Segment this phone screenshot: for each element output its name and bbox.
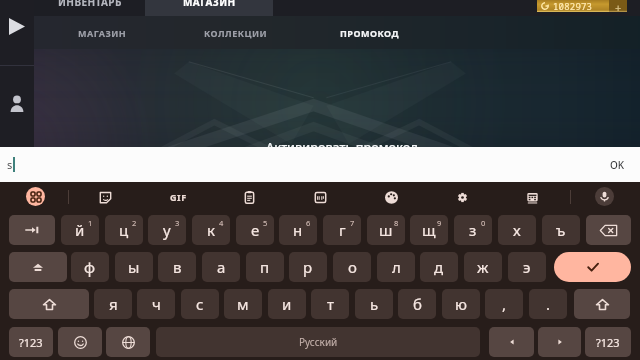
staticText: с xyxy=(196,294,204,314)
button[interactable]: з xyxy=(454,215,492,245)
button[interactable]: 1082973 xyxy=(537,0,627,12)
button[interactable]: Русский xyxy=(156,327,480,357)
button[interactable]: б xyxy=(398,289,436,319)
button[interactable]: КОЛЛЕКЦИИ xyxy=(176,16,296,49)
staticText: б xyxy=(413,294,422,314)
button[interactable]: Keyboard modes xyxy=(520,185,544,209)
button[interactable]: ъ xyxy=(542,215,580,245)
button[interactable]: д xyxy=(420,252,458,282)
staticText: ?123 xyxy=(596,335,620,350)
button[interactable]: Themes xyxy=(379,185,403,209)
button[interactable]: ц xyxy=(105,215,143,245)
button[interactable]: й xyxy=(61,215,99,245)
staticText: 1 xyxy=(88,218,93,228)
staticText: и xyxy=(282,294,292,314)
staticText: МАГАЗИН xyxy=(78,27,127,39)
button[interactable]: в xyxy=(158,252,196,282)
staticText: Активировать промокод xyxy=(266,139,418,156)
button[interactable]: Apps xyxy=(26,187,45,206)
staticText: + xyxy=(615,0,622,12)
button[interactable]: МАГАЗИН xyxy=(145,0,273,16)
button[interactable]: МАГАЗИН xyxy=(42,16,162,49)
staticText: ?123 xyxy=(19,335,43,350)
staticText: о xyxy=(348,257,357,277)
button[interactable]: ч xyxy=(137,289,175,319)
button[interactable]: ИНВЕНТАРЬ xyxy=(35,0,145,16)
staticText: ъ xyxy=(556,220,566,240)
button[interactable]: Voice input xyxy=(595,187,614,206)
button[interactable]: Stickers xyxy=(93,185,117,209)
button[interactable]: . xyxy=(529,289,567,319)
button[interactable]: Add gold xyxy=(609,0,627,12)
staticText: е xyxy=(251,220,260,240)
staticText: ф xyxy=(84,257,96,277)
button[interactable]: я xyxy=(94,289,132,319)
button[interactable]: т xyxy=(311,289,349,319)
button[interactable]: ?123 xyxy=(9,327,53,357)
button[interactable]: и xyxy=(268,289,306,319)
button[interactable]: Move cursor left xyxy=(489,327,534,357)
button[interactable]: ш xyxy=(367,215,405,245)
button[interactable]: Caps lock xyxy=(9,252,67,282)
staticText: я xyxy=(109,294,118,314)
button[interactable]: ю xyxy=(442,289,480,319)
button[interactable]: Play xyxy=(0,0,34,65)
staticText: 8 xyxy=(394,218,399,228)
button[interactable]: а xyxy=(202,252,240,282)
staticText: . xyxy=(546,294,551,314)
button[interactable]: ы xyxy=(115,252,153,282)
button[interactable]: , xyxy=(485,289,523,319)
staticText: s xyxy=(7,157,13,172)
staticText: э xyxy=(523,257,531,277)
staticText: м xyxy=(237,294,249,314)
button[interactable]: ПРОМОКОД xyxy=(309,16,429,49)
staticText: к xyxy=(207,220,215,240)
button[interactable]: Enter xyxy=(554,252,631,282)
button[interactable]: GIF xyxy=(164,185,192,209)
button[interactable]: OK xyxy=(594,147,640,182)
button[interactable]: Clipboard xyxy=(237,185,261,209)
staticText: з xyxy=(469,220,477,240)
button[interactable]: Активировать промокод xyxy=(266,139,418,156)
staticText: ч xyxy=(152,294,161,314)
staticText: ИНВЕНТАРЬ xyxy=(58,0,122,9)
button[interactable]: Shift xyxy=(9,289,89,319)
button[interactable]: п xyxy=(246,252,284,282)
button[interactable]: г xyxy=(323,215,361,245)
staticText: н xyxy=(293,220,303,240)
button[interactable]: Change language xyxy=(106,327,150,357)
button[interactable]: м xyxy=(224,289,262,319)
button[interactable]: у xyxy=(148,215,186,245)
button[interactable]: Emoji xyxy=(58,327,102,357)
button[interactable]: ?123 xyxy=(585,327,631,357)
button[interactable]: н xyxy=(279,215,317,245)
button[interactable]: л xyxy=(377,252,415,282)
button[interactable]: е xyxy=(236,215,274,245)
staticText: п xyxy=(260,257,270,277)
button[interactable]: ф xyxy=(71,252,109,282)
staticText: 5 xyxy=(263,218,268,228)
button[interactable]: р xyxy=(289,252,327,282)
button[interactable]: щ xyxy=(410,215,448,245)
button[interactable]: Translate xyxy=(308,185,332,209)
button[interactable]: к xyxy=(192,215,230,245)
button[interactable]: Move cursor right xyxy=(538,327,581,357)
button[interactable]: Shift xyxy=(574,289,630,319)
staticText: ш xyxy=(379,220,393,240)
staticText: р xyxy=(303,257,313,277)
button[interactable]: х xyxy=(498,215,536,245)
button[interactable]: э xyxy=(508,252,546,282)
button[interactable]: Tab xyxy=(9,215,55,245)
staticText: OK xyxy=(610,158,625,172)
button[interactable]: с xyxy=(181,289,219,319)
staticText: г xyxy=(339,220,346,240)
button[interactable]: ж xyxy=(464,252,502,282)
button[interactable]: Settings xyxy=(450,185,474,209)
button[interactable]: ь xyxy=(355,289,393,319)
button[interactable]: Backspace xyxy=(586,215,631,245)
staticText: ь xyxy=(370,294,379,314)
staticText: 1082973 xyxy=(553,0,593,12)
button[interactable]: о xyxy=(333,252,371,282)
button[interactable]: Profile xyxy=(0,66,34,136)
staticText: 4 xyxy=(219,218,224,228)
